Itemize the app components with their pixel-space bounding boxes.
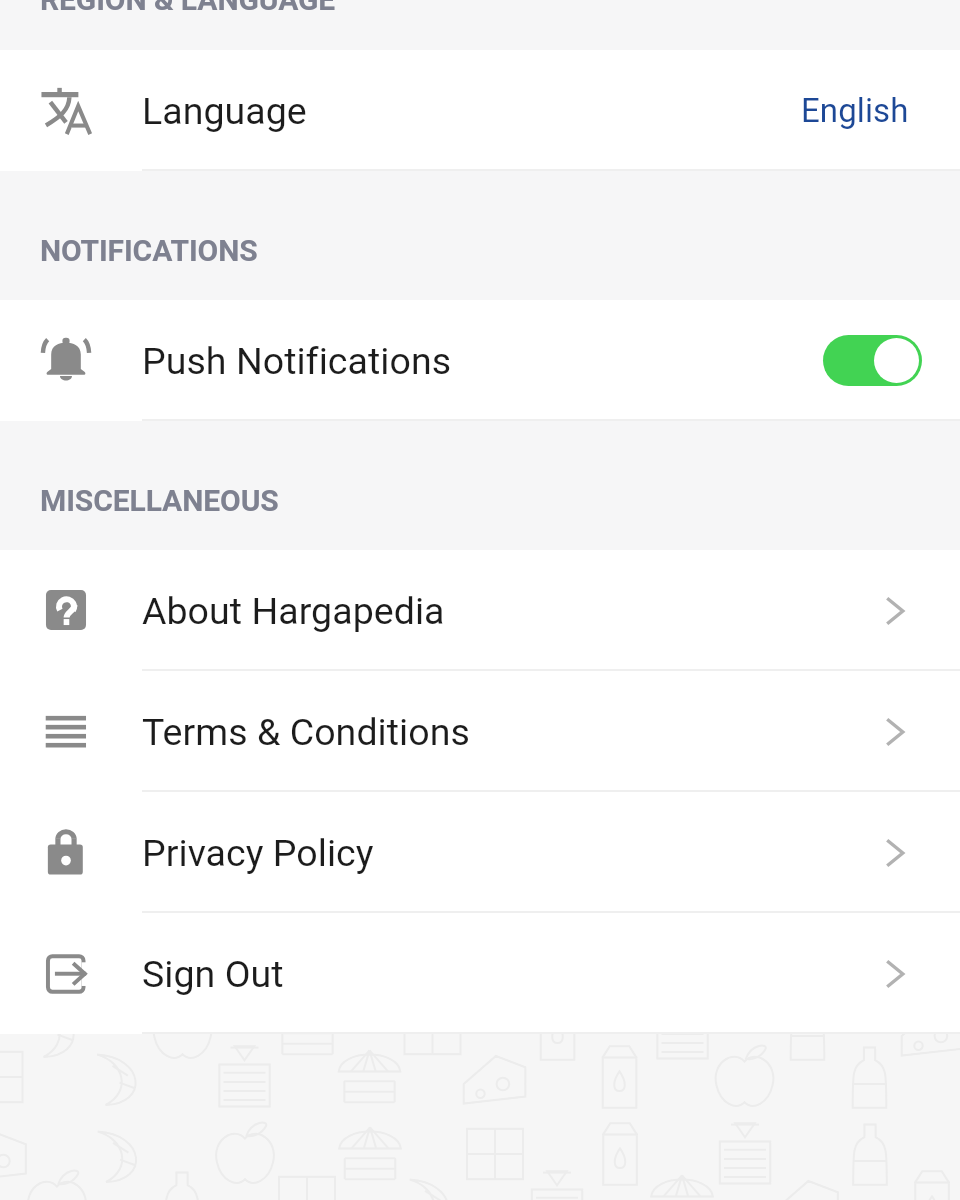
staticText: About Hargapedia	[142, 589, 884, 633]
staticText: MISCELLANEOUS	[40, 483, 279, 518]
button[interactable]: Push Notifications	[0, 300, 960, 421]
staticText: Language	[142, 89, 811, 133]
button[interactable]: Language	[0, 50, 960, 171]
other: Open Privacy Policy	[874, 833, 914, 873]
other: Open About Hargapedia	[874, 591, 914, 631]
staticText: REGION & LANGUAGE	[40, 0, 336, 17]
staticText: Privacy Policy	[142, 831, 884, 875]
staticText: English	[801, 91, 909, 130]
button[interactable]: Terms & Conditions	[0, 671, 960, 792]
staticText: Sign Out	[142, 952, 884, 996]
staticText: Push Notifications	[142, 339, 833, 383]
button[interactable]: Toggle Push Notifications	[823, 335, 922, 386]
other: Open Terms & Conditions	[874, 712, 914, 752]
staticText: Terms & Conditions	[142, 710, 884, 754]
button[interactable]: Sign Out	[0, 913, 960, 1034]
other: Open Sign Out	[874, 954, 914, 994]
button[interactable]: Privacy Policy	[0, 792, 960, 913]
staticText: NOTIFICATIONS	[40, 233, 258, 268]
button[interactable]: About Hargapedia	[0, 550, 960, 671]
